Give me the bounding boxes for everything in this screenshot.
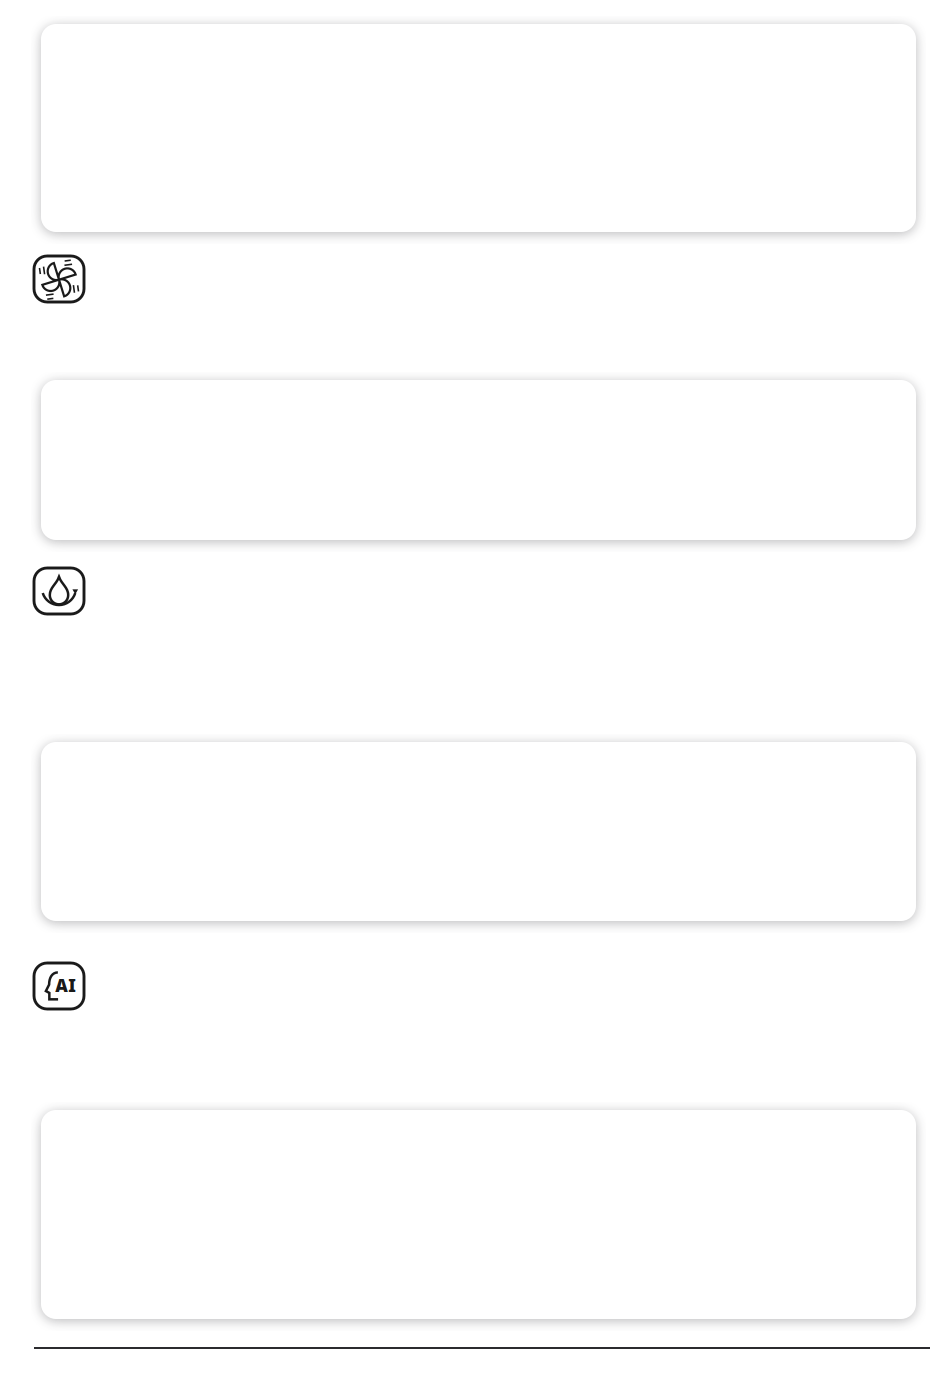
button[interactable]: Fan speed	[34, 256, 84, 302]
staticText: AI	[55, 974, 76, 997]
button[interactable]: Humidity	[34, 568, 84, 614]
button[interactable]: AI assistant	[34, 963, 84, 1009]
